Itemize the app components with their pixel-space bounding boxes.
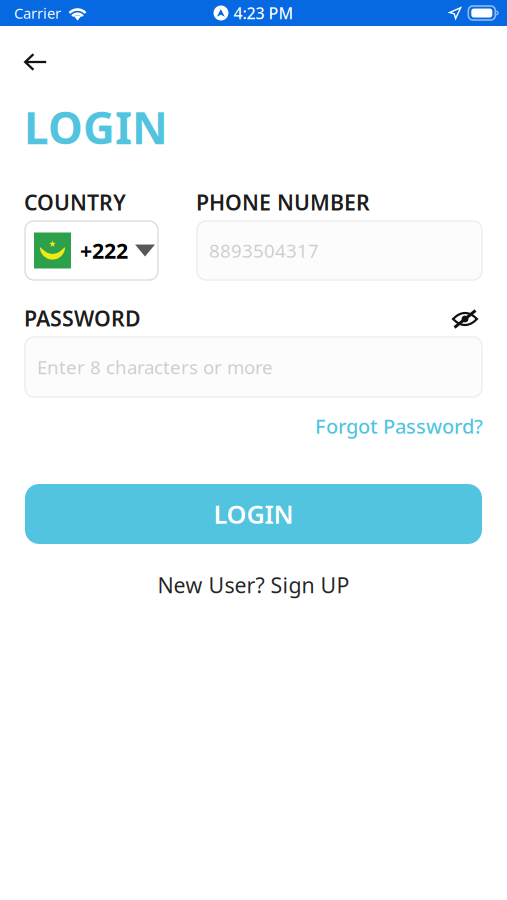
staticText: LOGIN [24,98,168,156]
staticText: Enter 8 characters or more [37,355,273,379]
button[interactable]: New User? Sign UP [25,569,482,601]
button[interactable]: Back [6,37,65,87]
staticText: 4:23 PM [233,2,293,24]
staticText: +222 [80,236,128,265]
staticText: 8893504317 [209,238,319,263]
staticText: Carrier [14,3,61,23]
button[interactable]: Show password [444,300,486,338]
staticText: COUNTRY [24,188,126,216]
button[interactable]: Forgot Password? [303,410,483,442]
staticText: New User? Sign UP [157,571,349,599]
button[interactable]: +222 [25,221,158,280]
button[interactable]: LOGIN [25,484,482,544]
staticText: Forgot Password? [315,413,483,439]
staticText: LOGIN [213,497,293,531]
staticText: PASSWORD [24,304,141,332]
staticText: PHONE NUMBER [196,188,370,216]
